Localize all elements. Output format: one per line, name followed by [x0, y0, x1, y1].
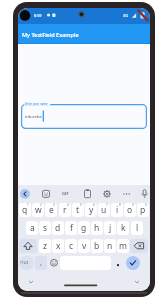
button[interactable]: p	[137, 203, 149, 217]
button[interactable]: a	[26, 221, 38, 235]
staticText: 4	[67, 203, 69, 207]
button[interactable]: m	[117, 239, 129, 253]
staticText: ,	[40, 258, 42, 268]
staticText: 8	[119, 203, 121, 207]
staticText: u	[101, 204, 107, 216]
staticText: i	[116, 204, 119, 216]
staticText: z	[43, 240, 47, 252]
staticText: y	[89, 204, 94, 216]
staticText: Enter your name	[25, 102, 48, 106]
button[interactable]: Enter your name	[21, 104, 147, 129]
button[interactable]	[112, 256, 124, 270]
button[interactable]: d	[52, 221, 64, 235]
button[interactable]	[19, 256, 34, 270]
staticText: 6	[93, 203, 95, 207]
button[interactable]: h	[91, 221, 103, 235]
button[interactable]: j	[104, 221, 116, 235]
button[interactable]: e	[45, 203, 57, 217]
button[interactable]: q	[19, 203, 31, 217]
staticText: w	[35, 204, 42, 216]
staticText: 2	[40, 203, 42, 207]
staticText: g	[81, 222, 87, 234]
button[interactable]	[130, 239, 148, 253]
staticText: t	[76, 204, 80, 216]
staticText: j	[109, 222, 112, 234]
button[interactable]: b	[91, 239, 103, 253]
button[interactable]: k	[117, 221, 129, 235]
button[interactable]: GIF	[18, 185, 150, 203]
button[interactable]	[126, 256, 140, 270]
staticText: a	[30, 222, 35, 234]
staticText: f	[70, 222, 73, 234]
button[interactable]: s	[39, 221, 51, 235]
staticText: n	[107, 240, 113, 252]
staticText: GIF	[62, 191, 69, 196]
staticText: d	[55, 222, 61, 234]
staticText: 7	[106, 203, 108, 207]
staticText: e	[49, 204, 54, 216]
button[interactable]: t	[72, 203, 84, 217]
button[interactable]: o	[124, 203, 136, 217]
staticText: m	[119, 240, 127, 252]
button[interactable]	[19, 239, 37, 253]
button[interactable]: c	[65, 239, 77, 253]
staticText: 9	[132, 203, 134, 207]
staticText: My TextField Example	[22, 31, 79, 38]
button[interactable]: i	[111, 203, 123, 217]
staticText: ?123	[20, 260, 29, 265]
button[interactable]: l	[131, 221, 143, 235]
staticText: l	[136, 222, 139, 234]
staticText: o	[127, 204, 133, 216]
staticText: v	[82, 240, 87, 252]
button[interactable]: w	[32, 203, 44, 217]
staticText: 3	[53, 203, 55, 207]
staticText: edureka	[25, 113, 42, 119]
staticText: 0	[145, 203, 147, 207]
staticText: c	[69, 240, 74, 252]
button[interactable]: z	[39, 239, 51, 253]
staticText: x	[56, 240, 61, 252]
staticText: 3G	[123, 13, 128, 18]
button[interactable]	[48, 256, 60, 270]
button[interactable]: ,	[35, 256, 47, 270]
button[interactable]: u	[98, 203, 110, 217]
button[interactable]: My TextField Example	[18, 24, 150, 44]
button[interactable]: y	[85, 203, 97, 217]
staticText: s	[43, 222, 48, 234]
button[interactable]: n	[104, 239, 116, 253]
button[interactable]: r	[59, 203, 71, 217]
staticText: 1	[27, 203, 29, 207]
staticText: h	[94, 222, 100, 234]
staticText: 8:59	[34, 13, 42, 18]
staticText: q	[22, 204, 28, 216]
staticText: r	[63, 204, 67, 216]
staticText: 5	[80, 203, 82, 207]
button[interactable]	[20, 189, 30, 199]
button[interactable]: v	[78, 239, 90, 253]
button[interactable]: x	[52, 239, 64, 253]
staticText: p	[140, 204, 146, 216]
staticText: k	[121, 222, 126, 234]
button[interactable]: g	[78, 221, 90, 235]
button[interactable]: f	[65, 221, 77, 235]
staticText: b	[94, 240, 100, 252]
